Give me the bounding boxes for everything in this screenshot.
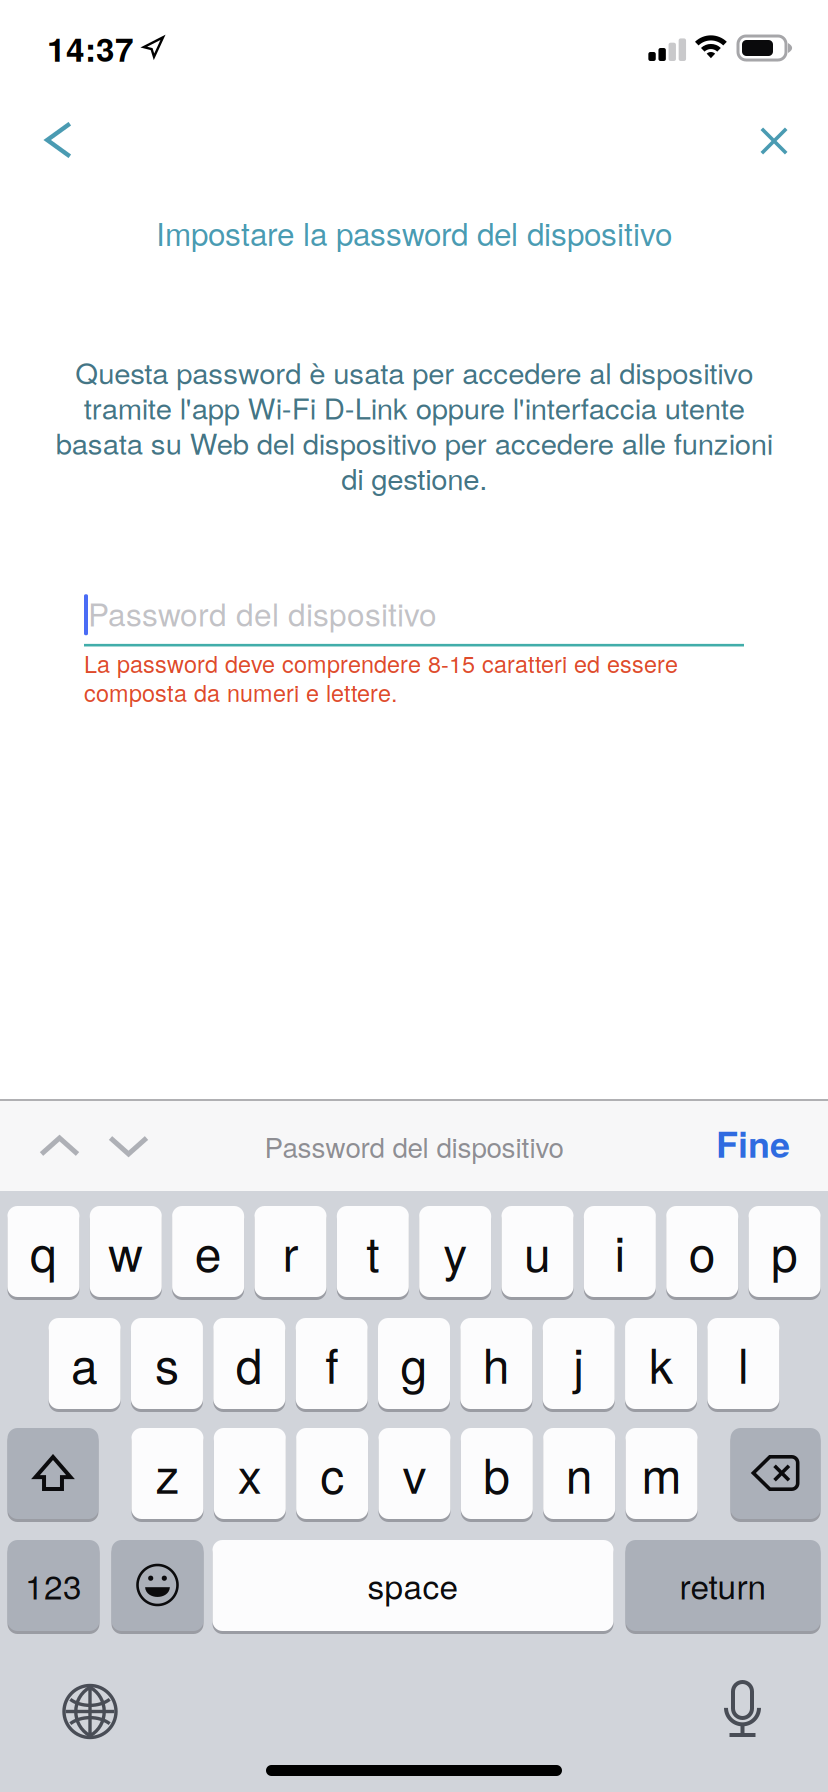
button[interactable]: Previous field: [25, 1107, 94, 1184]
staticText: l: [738, 1329, 749, 1397]
button[interactable]: 123: [7, 1540, 99, 1634]
staticText: La password deve comprendere 8-15 caratt…: [84, 648, 678, 706]
staticText: return: [679, 1561, 766, 1609]
button[interactable]: Next field: [94, 1107, 163, 1184]
staticText: Fine: [716, 1117, 790, 1169]
staticText: z: [155, 1439, 179, 1507]
staticText: x: [238, 1439, 262, 1507]
button[interactable]: f: [296, 1318, 368, 1412]
button[interactable]: space: [212, 1540, 613, 1634]
button[interactable]: Fine: [700, 1098, 803, 1194]
button[interactable]: c: [296, 1428, 368, 1522]
staticText: f: [325, 1329, 338, 1397]
button[interactable]: i: [584, 1206, 656, 1300]
button[interactable]: v: [378, 1428, 450, 1522]
staticText: space: [367, 1561, 458, 1609]
button[interactable]: h: [460, 1318, 532, 1412]
button[interactable]: r: [254, 1206, 326, 1300]
staticText: j: [573, 1329, 584, 1397]
button[interactable]: a: [49, 1318, 121, 1412]
button[interactable]: y: [419, 1206, 491, 1300]
button[interactable]: k: [625, 1318, 697, 1412]
staticText: h: [483, 1329, 510, 1397]
button[interactable]: Delete: [730, 1428, 820, 1522]
button[interactable]: z: [131, 1428, 203, 1522]
button[interactable]: Dictate: [700, 1669, 784, 1754]
staticText: n: [566, 1439, 593, 1507]
staticText: m: [641, 1439, 681, 1507]
button[interactable]: t: [337, 1206, 409, 1300]
button[interactable]: Next keyboard: [44, 1670, 132, 1752]
button[interactable]: d: [213, 1318, 285, 1412]
button[interactable]: Shift: [7, 1428, 98, 1522]
staticText: Password del dispositivo: [88, 590, 437, 635]
button[interactable]: q: [7, 1206, 79, 1300]
button[interactable]: m: [625, 1428, 697, 1522]
staticText: Impostare la password del dispositivo: [156, 210, 672, 255]
staticText: u: [524, 1217, 551, 1285]
staticText: o: [689, 1217, 716, 1285]
staticText: v: [402, 1439, 426, 1507]
staticText: y: [443, 1217, 467, 1285]
staticText: r: [282, 1217, 298, 1285]
button[interactable]: Emoji: [111, 1540, 203, 1634]
staticText: p: [771, 1217, 798, 1285]
button[interactable]: e: [172, 1206, 244, 1300]
button[interactable]: p: [749, 1206, 821, 1300]
button[interactable]: x: [214, 1428, 286, 1522]
staticText: t: [366, 1217, 379, 1285]
staticText: c: [320, 1439, 344, 1507]
button[interactable]: n: [543, 1428, 615, 1522]
button[interactable]: w: [90, 1206, 162, 1300]
button[interactable]: o: [666, 1206, 738, 1300]
staticText: k: [649, 1329, 673, 1397]
staticText: e: [195, 1217, 222, 1285]
button[interactable]: Back: [0, 106, 98, 171]
staticText: g: [400, 1329, 427, 1397]
staticText: s: [155, 1329, 179, 1397]
staticText: 123: [25, 1561, 82, 1609]
staticText: a: [71, 1329, 98, 1397]
staticText: b: [483, 1439, 510, 1507]
staticText: d: [236, 1329, 263, 1397]
button[interactable]: Close: [734, 107, 828, 171]
staticText: i: [614, 1217, 625, 1285]
button[interactable]: u: [501, 1206, 573, 1300]
staticText: Password del dispositivo: [264, 1126, 563, 1166]
button[interactable]: j: [543, 1318, 615, 1412]
button[interactable]: b: [461, 1428, 533, 1522]
staticText: 14:37: [47, 24, 134, 72]
staticText: Questa password è usata per accedere al …: [55, 354, 772, 495]
staticText: w: [108, 1217, 143, 1285]
button[interactable]: g: [378, 1318, 450, 1412]
button[interactable]: return: [625, 1540, 820, 1634]
button[interactable]: s: [131, 1318, 203, 1412]
button[interactable]: l: [707, 1318, 779, 1412]
staticText: q: [30, 1217, 57, 1285]
